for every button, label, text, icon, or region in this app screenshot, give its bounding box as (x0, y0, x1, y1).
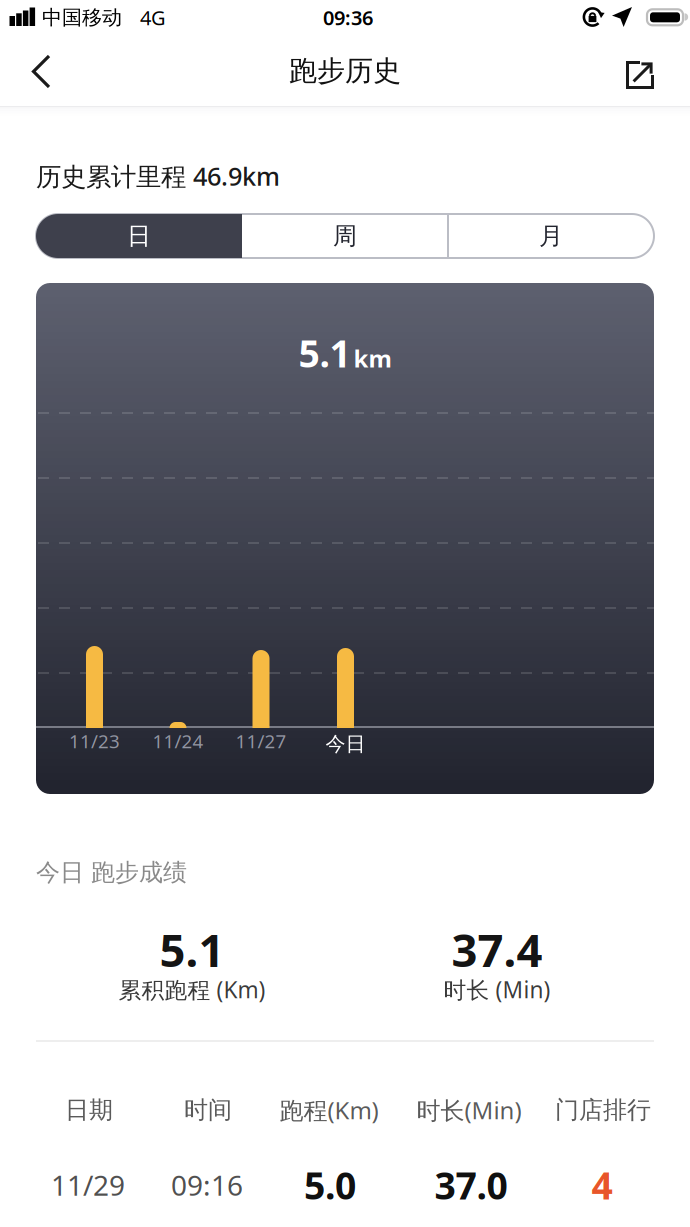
staticText: 5.1 (159, 919, 224, 980)
staticText: 11/23 (69, 729, 120, 753)
staticText: 日期 (65, 1095, 113, 1125)
staticText: 今日 跑步成绩 (36, 858, 187, 887)
staticText: 时长 (Min) (443, 974, 550, 1004)
staticText: 跑步历史 (289, 54, 401, 88)
staticText: 门店排行 (555, 1095, 651, 1125)
staticText: 今日 (325, 732, 365, 756)
staticText: 时长(Min) (416, 1094, 521, 1126)
staticText: 5.0 (304, 1160, 356, 1210)
staticText: 跑程(Km) (279, 1094, 378, 1126)
button[interactable]: Back (0, 44, 84, 106)
staticText: 4 (591, 1160, 612, 1210)
button[interactable]: Share (600, 44, 680, 106)
staticText: km (353, 342, 391, 374)
staticText: 11/24 (152, 729, 203, 753)
staticText: 周 (333, 221, 357, 251)
button[interactable]: 月 (448, 214, 654, 258)
staticText: 累积跑程 (Km) (118, 974, 265, 1004)
staticText: 时间 (184, 1095, 232, 1125)
button[interactable]: 日 (36, 214, 242, 258)
staticText: 09:16 (171, 1166, 243, 1204)
staticText: 09:36 (323, 4, 373, 31)
staticText: 4G (140, 4, 166, 31)
staticText: 月 (539, 221, 563, 251)
staticText: 11/29 (51, 1166, 125, 1204)
staticText: 37.4 (451, 919, 542, 980)
staticText: 历史累计里程 46.9km (36, 159, 280, 193)
staticText: 5.1 (298, 328, 350, 378)
staticText: 37.0 (434, 1160, 507, 1210)
button[interactable]: 周 (242, 214, 448, 258)
staticText: 日 (127, 221, 151, 251)
staticText: 中国移动 (42, 5, 122, 30)
staticText: 11/27 (235, 729, 286, 753)
